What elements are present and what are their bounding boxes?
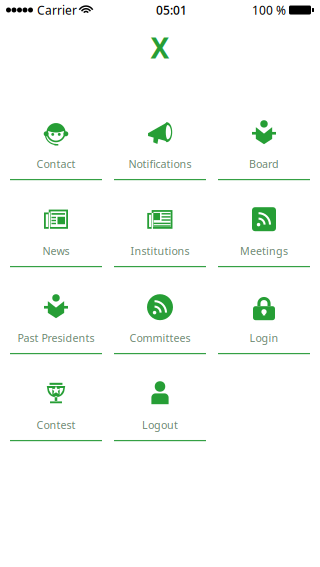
staticText: Login xyxy=(249,331,278,345)
button[interactable]: Past Presidents xyxy=(10,267,102,354)
staticText: Logout xyxy=(142,418,178,432)
staticText: Contact xyxy=(36,157,75,171)
button[interactable]: Contact xyxy=(10,93,102,180)
button[interactable]: Committees xyxy=(114,267,206,354)
staticText: Board xyxy=(249,157,279,171)
staticText: Notifications xyxy=(128,157,191,171)
staticText: Committees xyxy=(129,331,190,345)
staticText: Contest xyxy=(36,418,75,432)
button[interactable]: Board xyxy=(218,93,310,180)
staticText: 100 % xyxy=(252,2,286,18)
staticText: Meetings xyxy=(240,244,288,258)
button[interactable]: Contest xyxy=(10,354,102,441)
button[interactable]: News xyxy=(10,180,102,267)
staticText: 05:01 xyxy=(156,2,187,18)
staticText: Institutions xyxy=(130,244,189,258)
button[interactable]: Meetings xyxy=(218,180,310,267)
staticText: Past Presidents xyxy=(17,331,94,345)
button[interactable]: Notifications xyxy=(114,93,206,180)
staticText: Carrier xyxy=(37,2,77,18)
button[interactable]: Login xyxy=(218,267,310,354)
button[interactable]: Institutions xyxy=(114,180,206,267)
staticText: News xyxy=(42,244,69,258)
staticText: X xyxy=(150,29,169,66)
button[interactable]: Logout xyxy=(114,354,206,441)
